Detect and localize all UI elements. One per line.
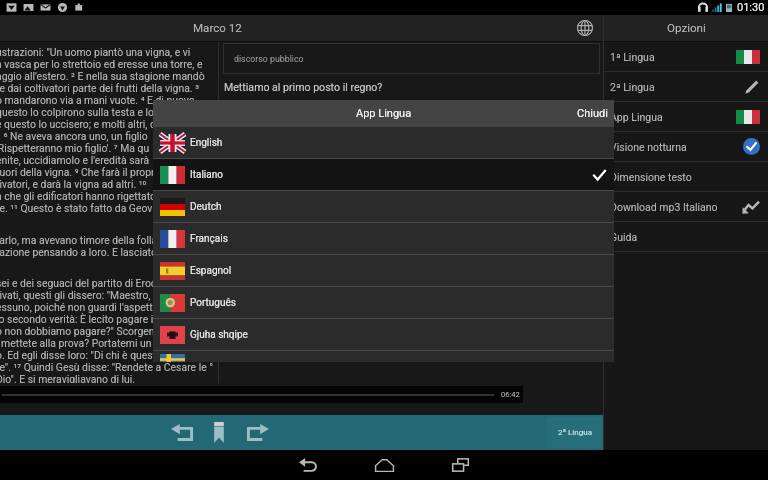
button[interactable]: Redo (239, 415, 276, 450)
button[interactable] (153, 351, 614, 362)
staticText: rarlo, ma avevano timore della folla, p (0, 234, 168, 246)
staticText: o non dobbiamo pagare?" Scorgendo (0, 325, 167, 337)
button[interactable]: Download mp3 Italiano (604, 192, 768, 221)
staticText: rivati, questi gli dissero: "Maestro, sa (0, 289, 165, 301)
staticText: e questo lo uccisero; e molti altri, d (0, 118, 156, 130)
staticText: ⁶ Ne aveva ancora uno, un figlio (0, 130, 148, 142)
button[interactable]: Language (570, 15, 600, 41)
staticText: o. Ed egli disse loro: "Di chi è questa (0, 349, 162, 361)
button[interactable]: Français (153, 223, 614, 254)
staticText: 'Rispetteranno mio figlio'. ⁷ Ma qu (0, 142, 150, 154)
staticText: ustrazioni: "Un uomo piantò una vigna, e… (0, 46, 191, 58)
staticText: enite, uccidiamolo e l'eredità sarà (0, 154, 150, 166)
staticText: 06:42 (501, 390, 520, 399)
button[interactable]: App Lingua (604, 102, 768, 131)
staticText: essuno, poiché non guardi l'aspetto d (0, 301, 167, 313)
staticText: Guida (610, 231, 638, 243)
staticText: razione pensando a loro. E lasciatolo, s (0, 246, 176, 258)
staticText: Mettiamo al primo posto il regno? (224, 81, 383, 93)
staticText: Deutch (190, 201, 222, 213)
button[interactable]: Dimensione testo (604, 162, 768, 191)
staticText: i mettete alla prova? Portatemi un d (0, 337, 160, 349)
staticText: App Lingua (356, 107, 412, 120)
button[interactable]: Undo (163, 415, 200, 450)
staticText: Italiano (190, 169, 223, 181)
staticText: fuori della vigna. ⁹ Che farà il propr (0, 166, 155, 178)
staticText: Espagnol (190, 265, 232, 277)
button[interactable]: Visione notturna (604, 132, 768, 161)
staticText: Português (190, 297, 236, 309)
staticText: Download mp3 Italiano (610, 201, 718, 213)
staticText: sei e dei seguaci del partito di Erode, (0, 277, 165, 289)
staticText: Français (190, 233, 228, 245)
staticText: Visione notturna (610, 141, 687, 153)
staticText: 1ª Lingua (610, 51, 655, 63)
staticText: re. ¹¹ Questo è stato fatto da Geov (0, 202, 153, 214)
staticText: discorso pubblico (234, 54, 304, 64)
button[interactable]: Português (153, 287, 614, 318)
staticText: 01:30 (737, 1, 765, 14)
staticText: 2ª Lingua (558, 428, 592, 437)
staticText: tivatori, e darà la vigna ad altri. ¹⁰ (0, 178, 147, 190)
button[interactable]: Espagnol (153, 255, 614, 286)
button[interactable]: Italiano (153, 159, 614, 190)
staticText: o mandarono via a mani vuote. ⁴ E di nuo… (0, 94, 195, 106)
staticText: English (190, 137, 223, 149)
staticText: Opzioni (667, 21, 706, 35)
button[interactable]: English (153, 127, 614, 158)
button[interactable]: 1ª Lingua (604, 42, 768, 71)
staticText: a che gli edificatori hanno rigettato (0, 190, 156, 202)
button[interactable]: Home (346, 450, 422, 480)
staticText: Chiudi (577, 107, 608, 120)
button[interactable]: Bookmark (200, 415, 237, 450)
button[interactable]: Gjuha shqipe (153, 319, 614, 350)
button[interactable]: Deutch (153, 191, 614, 222)
staticText: questo lo colpirono sulla testa e lo (0, 106, 154, 118)
staticText: Dio". E si meravigliavano di lui. (0, 373, 136, 383)
staticText: Gjuha shqipe (190, 329, 248, 341)
staticText: Dimensione testo (610, 171, 692, 183)
staticText: re". ¹⁷ Quindi Gesù disse: "Rendete a Ce… (0, 361, 214, 373)
button[interactable]: Chiudi (571, 100, 614, 127)
button[interactable]: Recents (422, 450, 498, 480)
staticText: a vasca per lo strettoio ed eresse una t… (0, 58, 203, 70)
staticText: App Lingua (610, 111, 663, 123)
staticText: Marco 12 (193, 21, 242, 35)
button[interactable]: Guida (604, 222, 768, 251)
staticText: aggio all'estero. ² E nella sua stagione… (0, 70, 205, 82)
staticText: re dai coltivatori parte dei frutti dell… (0, 82, 199, 94)
button[interactable]: 2ª Lingua (604, 72, 768, 101)
button[interactable]: 2ª Lingua (547, 417, 602, 448)
button[interactable]: Back (270, 450, 346, 480)
staticText: 2ª Lingua (610, 81, 655, 93)
staticText: io secondo verità: È lecito pagare il t (0, 313, 162, 325)
